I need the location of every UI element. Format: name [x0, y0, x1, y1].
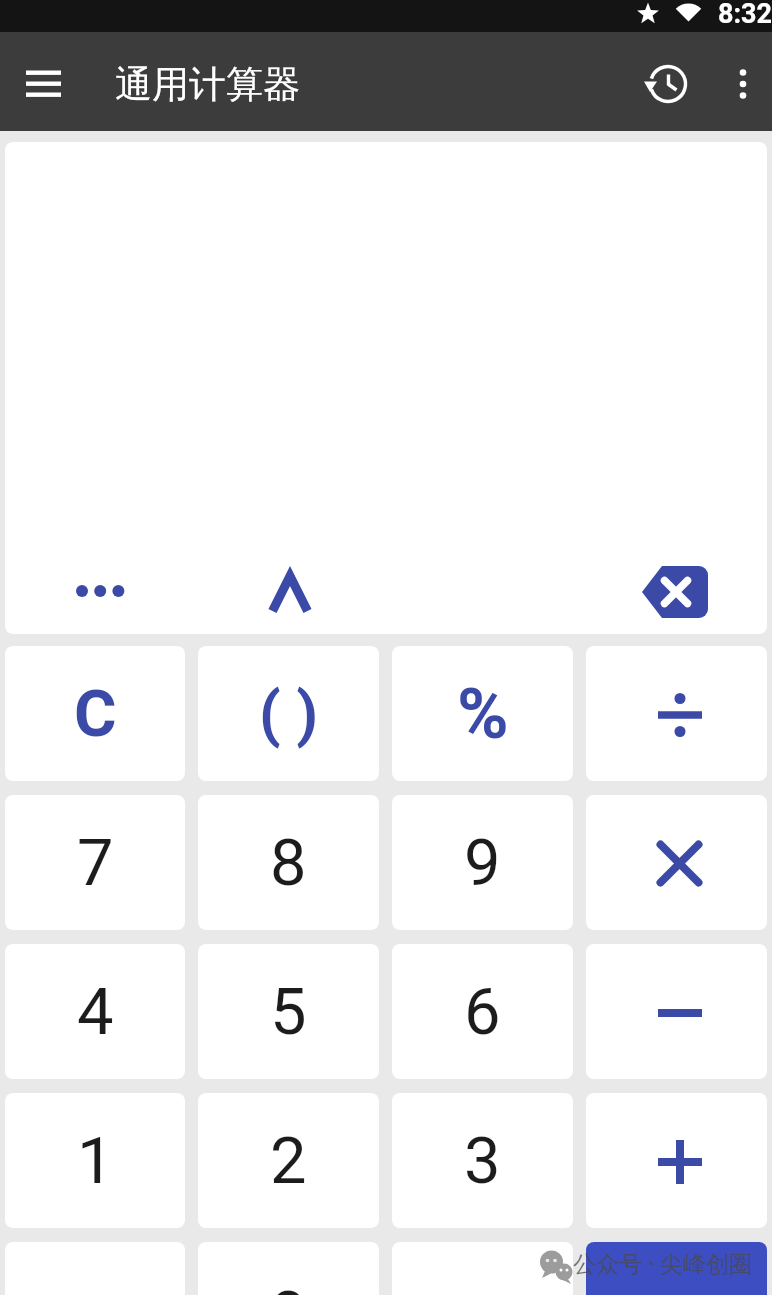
staticText: C [74, 676, 117, 752]
button[interactable]: 3 [392, 1093, 573, 1228]
button[interactable]: ( ) [198, 646, 379, 781]
staticText: ( ) [259, 677, 319, 750]
button[interactable]: 2 [198, 1093, 379, 1228]
staticText: 1 [77, 1123, 114, 1199]
button[interactable]: 6 [392, 944, 573, 1079]
staticText: 2 [270, 1123, 307, 1199]
button[interactable] [586, 646, 767, 781]
staticText: 9 [464, 825, 501, 901]
button[interactable]: 4 [5, 944, 185, 1079]
button[interactable]: 7 [5, 795, 185, 930]
button[interactable] [586, 795, 767, 930]
button[interactable]: 0 [198, 1242, 379, 1295]
staticText: % [457, 673, 509, 755]
staticText: 8:32 [718, 0, 772, 30]
button[interactable]: 9 [392, 795, 573, 930]
staticText: 6 [464, 974, 501, 1050]
button[interactable] [586, 1093, 767, 1228]
staticText: 7 [77, 825, 114, 901]
staticText: 通用计算器 [115, 61, 300, 108]
button[interactable] [627, 557, 723, 627]
button[interactable] [586, 1242, 767, 1295]
staticText: 8 [270, 825, 307, 901]
staticText: 3 [464, 1123, 501, 1199]
staticText: 4 [77, 974, 114, 1050]
button[interactable] [14, 60, 72, 108]
button[interactable] [718, 53, 768, 115]
staticText: 5 [270, 974, 307, 1050]
button[interactable]: 5 [198, 944, 379, 1079]
button[interactable]: C [5, 646, 185, 781]
button[interactable]: 1 [5, 1093, 185, 1228]
staticText: 0 [270, 1277, 307, 1295]
button[interactable]: 8 [198, 795, 379, 930]
staticText: 公众号 · 尖峰创圈 [573, 1247, 753, 1278]
button[interactable] [640, 53, 696, 115]
button[interactable] [60, 561, 140, 621]
button[interactable] [586, 944, 767, 1079]
button[interactable]: . [392, 1242, 573, 1295]
button[interactable]: % [392, 646, 573, 781]
button[interactable] [255, 563, 325, 623]
